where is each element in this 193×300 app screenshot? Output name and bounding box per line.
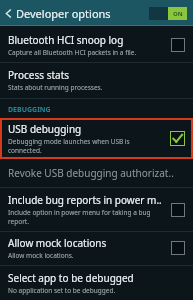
staticText: Debugging mode launches when USB is conn… [8,137,164,155]
staticText: Capture all Bluetooth HCI packets in a f… [8,48,137,57]
button[interactable]: Allow mock locations [0,232,193,265]
button[interactable]: Select app to be debugged [0,266,193,300]
button[interactable]: Include bug reports in power m.. [0,188,193,231]
staticText: ON [173,10,183,18]
staticText: Revoke USB debugging authorizat.. [8,166,174,180]
staticText: Include option in power menu for taking … [8,208,165,226]
button[interactable]: Checkbox checked [170,131,185,146]
staticText: Developer options [16,6,111,21]
staticText: Allow mock locations [8,236,107,250]
staticText: Select app to be debugged [8,271,134,285]
staticText: USB debugging [8,122,82,136]
button[interactable]: USB debugging [0,118,193,159]
button[interactable]: Checkbox [171,38,185,52]
button[interactable]: Developer options toggle, on [149,7,187,20]
staticText: Stats about running processes. [8,83,103,92]
staticText: No application set to be debugged. [8,286,116,295]
button[interactable]: Revoke USB debugging authorizat.. [0,159,193,187]
button[interactable]: Back [0,0,16,26]
staticText: Bluetooth HCI snoop log [8,33,124,47]
staticText: DEBUGGING [8,105,51,115]
button[interactable]: Process stats [0,63,193,98]
button[interactable]: Checkbox [171,203,185,217]
button[interactable]: Checkbox [171,241,185,255]
button[interactable]: Bluetooth HCI snoop log [0,29,193,62]
staticText: Allow mock locations. [8,251,74,260]
staticText: Process stats [8,68,70,82]
staticText: Include bug reports in power m.. [8,193,162,207]
